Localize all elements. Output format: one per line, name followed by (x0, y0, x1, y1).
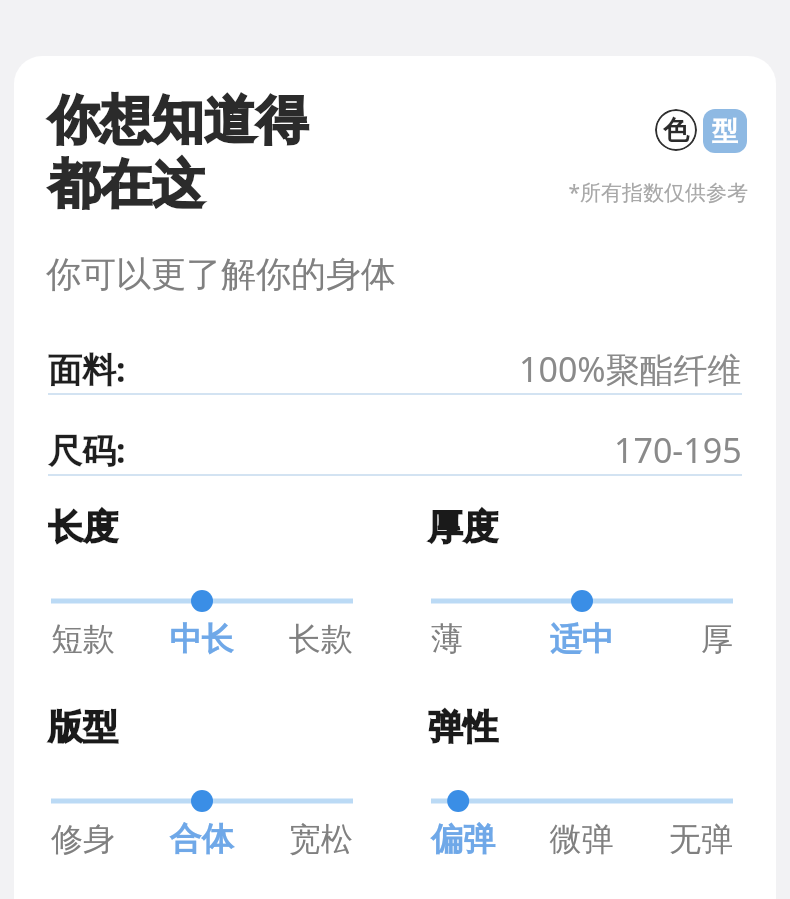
button[interactable]: 版型 (51, 787, 353, 815)
button[interactable]: 弹性 (431, 787, 733, 815)
staticText: 长度 (48, 505, 118, 549)
staticText: 宽松 (252, 819, 353, 859)
staticText: 修身 (51, 819, 151, 859)
button[interactable]: 型 (703, 109, 747, 153)
staticText: 170-195 (614, 427, 742, 473)
staticText: 面料: (48, 346, 126, 392)
staticText: 厚度 (428, 505, 498, 549)
staticText: 你可以更了解你的身体 (46, 252, 396, 296)
staticText: 版型 (48, 705, 118, 749)
staticText: 无弹 (632, 819, 733, 859)
staticText: 你想知道得 都在这 (48, 88, 308, 217)
staticText: 尺码: (48, 427, 126, 473)
staticText: 偏弹 (431, 819, 531, 859)
staticText: 厚 (632, 619, 733, 659)
staticText: 型 (712, 115, 738, 148)
button[interactable]: 色 (655, 109, 697, 151)
staticText: 色 (663, 114, 689, 147)
button[interactable]: 厚度 (431, 587, 733, 615)
staticText: *所有指数仅供参考 (448, 178, 748, 207)
staticText: 弹性 (428, 705, 498, 749)
staticText: 适中 (531, 619, 632, 659)
button[interactable]: 面料: (48, 345, 742, 393)
staticText: 薄 (431, 619, 531, 659)
button[interactable]: 尺码: (48, 426, 742, 474)
button[interactable]: 长度 (51, 587, 353, 615)
staticText: 短款 (51, 619, 151, 659)
staticText: 中长 (151, 619, 252, 659)
staticText: 微弹 (531, 819, 632, 859)
staticText: 长款 (252, 619, 353, 659)
staticText: 合体 (151, 819, 252, 859)
staticText: 100%聚酯纤维 (519, 346, 742, 392)
